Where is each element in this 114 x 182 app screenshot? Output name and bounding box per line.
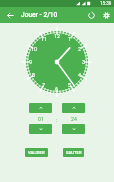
staticText: SAUTER bbox=[66, 150, 82, 155]
staticText: Jouer - 2/10 bbox=[21, 11, 58, 19]
staticText: 12 bbox=[54, 33, 61, 39]
button[interactable]: Replay bbox=[84, 7, 99, 23]
staticText: 5 bbox=[68, 82, 72, 88]
button[interactable]: Decrease bbox=[62, 124, 85, 134]
staticText: : bbox=[56, 116, 58, 123]
button[interactable]: Increase bbox=[29, 103, 52, 113]
button[interactable]: Decrease bbox=[29, 124, 52, 134]
staticText: 11 bbox=[41, 36, 48, 42]
staticText: 1 bbox=[68, 36, 72, 42]
staticText: 15:36 bbox=[100, 1, 112, 6]
staticText: 4 bbox=[78, 72, 82, 78]
staticText: 6 bbox=[55, 86, 59, 92]
staticText: 7 bbox=[42, 82, 46, 88]
staticText: 9 bbox=[29, 59, 33, 65]
staticText: 01 bbox=[38, 116, 44, 122]
staticText: VALIDER bbox=[28, 150, 45, 155]
staticText: 3 bbox=[82, 59, 86, 65]
button[interactable]: Increase bbox=[62, 103, 85, 113]
button[interactable]: VALIDER bbox=[25, 148, 48, 157]
staticText: 24 bbox=[71, 116, 77, 122]
button[interactable]: Back bbox=[0, 7, 21, 23]
staticText: 10 bbox=[31, 46, 38, 52]
staticText: 2 bbox=[78, 46, 82, 52]
staticText: 8 bbox=[32, 72, 36, 78]
button[interactable]: SAUTER bbox=[63, 148, 84, 157]
button[interactable]: Settings bbox=[99, 7, 114, 23]
